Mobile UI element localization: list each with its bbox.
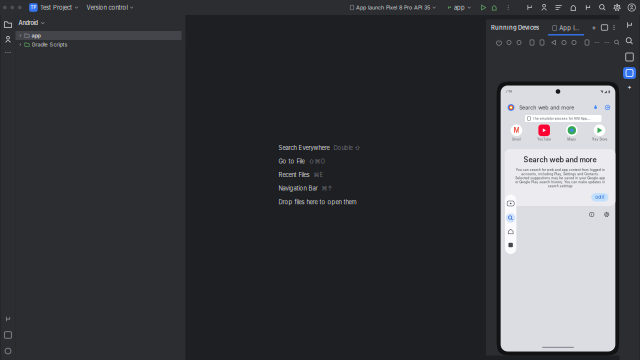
- button[interactable]: TP: [28, 2, 80, 13]
- staticText: Navigation Bar: [278, 185, 317, 192]
- staticText: You can search for web and app content f…: [515, 168, 605, 188]
- button[interactable]: Rotate left: [527, 36, 537, 49]
- button[interactable]: Overview: [569, 36, 579, 49]
- staticText: Running Devices: [491, 24, 539, 31]
- button[interactable]: Camera: [505, 198, 516, 209]
- staticText: Search web and more: [523, 155, 596, 164]
- button[interactable]: Gemini: [619, 81, 639, 94]
- staticText: Got it: [595, 195, 604, 200]
- button[interactable]: Power: [494, 36, 504, 49]
- button[interactable]: Gradle sync: [581, 1, 595, 13]
- staticText: Search web and more: [519, 104, 574, 111]
- button[interactable]: More run options: [504, 2, 513, 13]
- button[interactable]: Home: [559, 36, 569, 49]
- staticText: Search Everywhere: [278, 144, 329, 151]
- button[interactable]: More: [592, 36, 602, 49]
- button[interactable]: Home: [505, 226, 516, 237]
- button[interactable]: app: [446, 2, 473, 13]
- staticText: Gmail: [512, 137, 521, 141]
- button[interactable]: Back: [549, 36, 559, 49]
- staticText: ⌘E: [313, 171, 323, 178]
- staticText: App launch Pixel 8 Pro API 35: [356, 4, 430, 11]
- staticText: ◥ ◢ ▮: [600, 89, 610, 93]
- button[interactable]: Version control: [85, 2, 135, 13]
- staticText: ⌘↑: [321, 185, 332, 192]
- button[interactable]: Search: [505, 212, 516, 223]
- staticText: Android: [18, 20, 37, 26]
- staticText: M: [513, 126, 519, 134]
- button[interactable]: Make project: [522, 1, 537, 13]
- staticText: Drop files here to open them: [278, 198, 356, 206]
- button[interactable]: Hide: [618, 21, 629, 34]
- button[interactable]: Device Manager: [619, 33, 639, 49]
- staticText: ⇧⌘O: [308, 158, 324, 165]
- button[interactable]: Run: [478, 2, 489, 13]
- button[interactable]: App l…: [548, 19, 584, 35]
- staticText: ✦: [627, 84, 632, 91]
- button[interactable]: Options: [610, 21, 618, 34]
- button[interactable]: Version control: [0, 311, 15, 327]
- staticText: App l…: [559, 24, 579, 32]
- button[interactable]: Recents: [505, 239, 516, 250]
- staticText: Double ⇧: [333, 144, 360, 151]
- button[interactable]: Commit: [0, 32, 15, 47]
- staticText: Version control: [86, 4, 127, 11]
- button[interactable]: Rotate right: [537, 36, 547, 49]
- button[interactable]: Profiler: [537, 1, 551, 13]
- button[interactable]: App launch Pixel 8 Pro API 35: [349, 2, 438, 13]
- button[interactable]: Problems: [0, 343, 15, 359]
- button[interactable]: Running Devices: [619, 65, 639, 81]
- button[interactable]: Screenshot: [582, 36, 592, 49]
- button[interactable]: Layout options: [599, 21, 610, 34]
- staticText: YouTube: [537, 137, 551, 141]
- button[interactable]: app: [15, 31, 185, 40]
- button[interactable]: Settings: [610, 1, 624, 13]
- staticText: The emulator process for AVD App_…: [533, 117, 591, 120]
- button[interactable]: Device File Explorer: [619, 49, 639, 65]
- button[interactable]: Got it: [591, 193, 608, 201]
- button[interactable]: Info: [589, 212, 594, 217]
- button[interactable]: Add device: [589, 21, 599, 34]
- staticText: +: [591, 23, 596, 32]
- button[interactable]: Gradle: [619, 17, 639, 33]
- staticText: Recent Files: [278, 171, 309, 178]
- button[interactable]: Android: [15, 15, 185, 31]
- staticText: Gradle Scripts: [31, 41, 67, 48]
- button[interactable]: Account: [624, 1, 639, 13]
- button[interactable]: Gradle Scripts: [15, 40, 185, 49]
- staticText: app: [454, 4, 465, 11]
- button[interactable]: Volume down: [514, 36, 524, 49]
- staticText: Play Store: [591, 137, 607, 141]
- button[interactable]: Project: [0, 17, 15, 32]
- button[interactable]: Search: [595, 1, 610, 13]
- button[interactable]: Debug: [489, 2, 500, 13]
- button[interactable]: App quality insights: [566, 1, 581, 13]
- staticText: 7:14: [506, 89, 512, 94]
- button[interactable]: Settings: [604, 212, 609, 217]
- button[interactable]: More tool windows: [0, 47, 15, 58]
- staticText: app: [31, 32, 40, 39]
- staticText: TP: [30, 5, 36, 10]
- staticText: Maps: [567, 137, 576, 141]
- button[interactable]: Terminal: [0, 327, 15, 343]
- staticText: Go to File: [278, 158, 304, 165]
- button[interactable]: Search: [612, 36, 622, 49]
- button[interactable]: Extended controls: [602, 36, 612, 49]
- button[interactable]: Logcat: [551, 1, 566, 13]
- staticText: Test Project: [40, 4, 72, 11]
- button[interactable]: Volume up: [504, 36, 514, 49]
